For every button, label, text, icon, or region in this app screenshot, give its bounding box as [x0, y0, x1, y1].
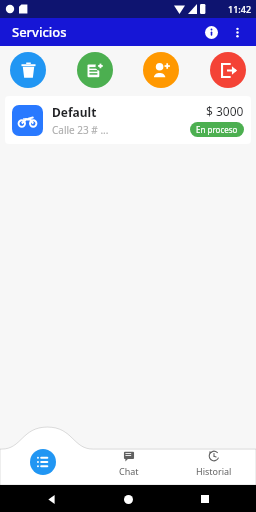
button[interactable]: Delete [10, 52, 46, 88]
staticText: Default [52, 104, 97, 120]
button[interactable]: Info [198, 19, 224, 45]
staticText: En proceso [196, 124, 238, 135]
button[interactable]: Add person [143, 52, 179, 88]
staticText: Calle 23 # ... [52, 123, 109, 137]
button[interactable]: More options [224, 19, 250, 45]
staticText: Historial [196, 465, 232, 477]
button[interactable]: Chat [86, 439, 171, 485]
button[interactable]: New note [77, 52, 113, 88]
staticText: $ 3000 [206, 103, 244, 119]
button[interactable]: Home [117, 488, 139, 510]
button[interactable]: Historial [171, 439, 256, 485]
button[interactable]: Recents [194, 488, 216, 510]
button[interactable]: Log out [210, 52, 246, 88]
staticText: Chat [119, 465, 139, 477]
button[interactable]: Default [5, 96, 251, 144]
staticText: Servicios [12, 23, 67, 41]
button[interactable]: Servicios [0, 439, 86, 485]
staticText: 11:42 [228, 3, 252, 15]
button[interactable]: Back [40, 488, 62, 510]
